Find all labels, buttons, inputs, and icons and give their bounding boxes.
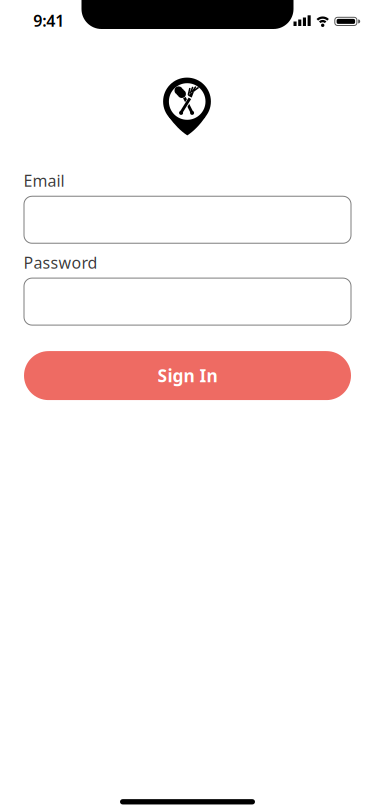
staticText: Sign In: [157, 364, 217, 387]
staticText: Password: [23, 252, 97, 273]
staticText: 9:41: [33, 10, 64, 31]
staticText: Email: [23, 170, 64, 191]
button[interactable]: Sign In: [24, 351, 351, 400]
button[interactable]: Email: [0, 196, 375, 243]
button[interactable]: Password: [0, 278, 375, 325]
